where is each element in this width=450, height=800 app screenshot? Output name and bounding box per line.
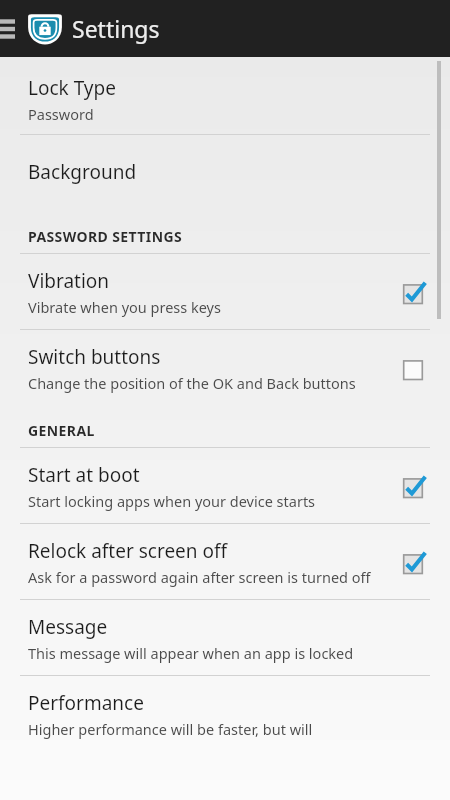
button[interactable]: Open navigation menu [0, 9, 18, 49]
staticText: Relock after screen off [28, 538, 228, 564]
button[interactable]: Message [0, 600, 450, 675]
staticText: This message will appear when an app is … [28, 643, 354, 663]
staticText: Change the position of the OK and Back b… [28, 373, 356, 393]
staticText: Vibrate when you press keys [28, 297, 221, 317]
staticText: Message [28, 614, 108, 640]
staticText: Switch buttons [28, 344, 161, 370]
staticText: Vibration [28, 268, 110, 294]
button[interactable]: Performance [0, 676, 450, 751]
staticText: Ask for a password again after screen is… [28, 567, 371, 587]
button[interactable]: Switch buttons [0, 330, 450, 405]
staticText: Start locking apps when your device star… [28, 491, 316, 511]
button[interactable]: Vibration [0, 254, 450, 329]
staticText: Lock Type [28, 75, 116, 101]
staticText: Password [28, 104, 94, 124]
staticText: Start at boot [28, 462, 140, 488]
staticText: Higher performance will be faster, but w… [28, 719, 313, 739]
staticText: Performance [28, 690, 144, 716]
button[interactable]: Background [0, 135, 450, 211]
staticText: Settings [72, 13, 160, 44]
staticText: Background [28, 159, 137, 185]
button[interactable]: Lock Type [0, 57, 450, 134]
staticText: GENERAL [28, 421, 95, 440]
button[interactable]: Start at boot [0, 448, 450, 523]
staticText: PASSWORD SETTINGS [28, 227, 183, 246]
button[interactable]: Relock after screen off [0, 524, 450, 599]
